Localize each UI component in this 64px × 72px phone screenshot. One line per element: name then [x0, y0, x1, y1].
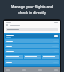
staticText: Manage your flights and	[11, 4, 53, 9]
button[interactable]: Menu	[6, 24, 58, 26]
button[interactable]	[24, 55, 41, 59]
button[interactable]	[5, 34, 59, 38]
button[interactable]	[5, 44, 59, 48]
button[interactable]	[42, 55, 59, 59]
button[interactable]	[6, 28, 58, 31]
button[interactable]	[5, 55, 23, 59]
button[interactable]	[5, 60, 59, 64]
button[interactable]	[5, 49, 59, 53]
staticText: check in directly	[18, 10, 46, 15]
button[interactable]	[5, 39, 59, 43]
